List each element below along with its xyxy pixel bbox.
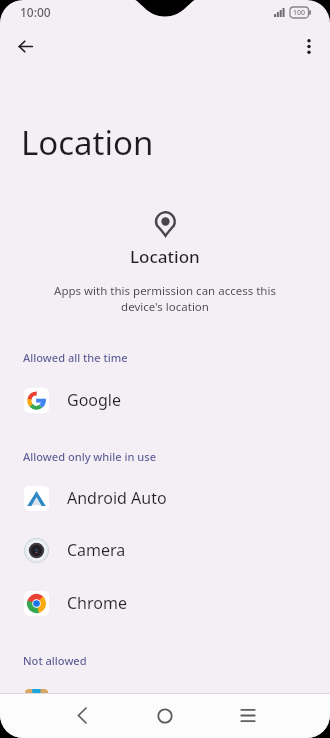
staticText: Allowed all the time bbox=[23, 350, 128, 365]
staticText: Location bbox=[130, 245, 200, 268]
button[interactable]: Recents bbox=[225, 693, 271, 738]
staticText: Camera bbox=[67, 539, 126, 561]
button[interactable]: More options bbox=[294, 34, 324, 58]
staticText: Allowed only while in use bbox=[23, 449, 157, 464]
staticText: 10:00 bbox=[20, 4, 51, 20]
staticText: 100 bbox=[293, 8, 306, 18]
staticText: Not allowed bbox=[23, 653, 87, 668]
button[interactable]: Chrome bbox=[0, 577, 330, 629]
staticText: Chrome bbox=[67, 592, 127, 614]
staticText: Apps with this permission can access thi… bbox=[50, 283, 280, 314]
staticText: Location bbox=[21, 120, 154, 165]
button[interactable]: Camera bbox=[0, 524, 330, 576]
button[interactable]: Back bbox=[59, 693, 105, 738]
button[interactable]: Home bbox=[142, 693, 188, 738]
button[interactable]: Google bbox=[0, 374, 330, 426]
button[interactable]: Android Auto bbox=[0, 472, 330, 524]
staticText: Android Auto bbox=[67, 487, 167, 509]
button[interactable]: Back bbox=[10, 34, 40, 58]
staticText: Google bbox=[67, 389, 122, 411]
